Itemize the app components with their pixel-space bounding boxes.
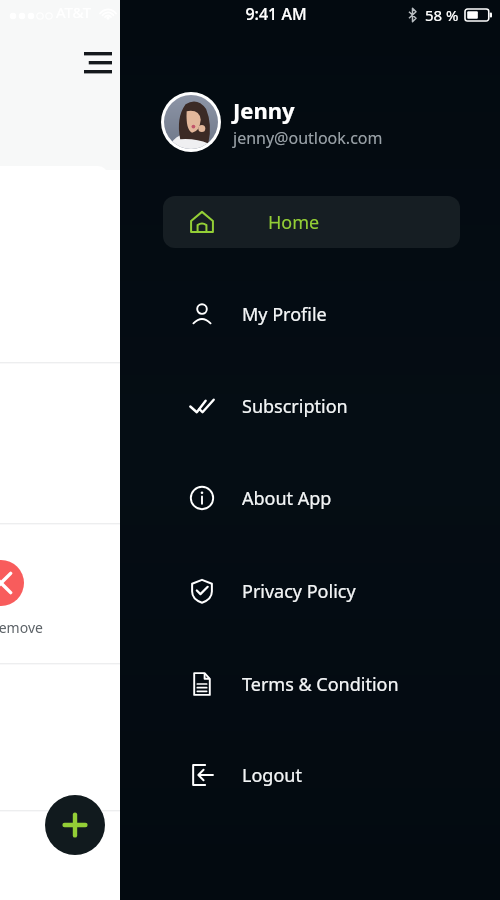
- staticText: My Profile: [242, 302, 327, 327]
- button[interactable]: Logout: [163, 753, 460, 797]
- staticText: Jenny: [233, 95, 295, 125]
- button[interactable]: Terms & Condition: [163, 662, 460, 706]
- button[interactable]: Subscription: [163, 384, 460, 428]
- staticText: Terms & Condition: [242, 672, 399, 697]
- staticText: Home: [268, 210, 320, 235]
- button[interactable]: Menu: [78, 44, 118, 76]
- button[interactable]: Home: [163, 196, 460, 248]
- staticText: Privacy Policy: [242, 579, 356, 604]
- staticText: Remove: [0, 618, 43, 637]
- staticText: 9:41 AM: [120, 3, 432, 25]
- button[interactable]: Privacy Policy: [163, 569, 460, 613]
- staticText: Logout: [242, 763, 302, 788]
- button[interactable]: About App: [163, 476, 460, 520]
- button[interactable]: Remove: [0, 560, 24, 606]
- button[interactable]: My Profile: [163, 292, 460, 336]
- staticText: About App: [242, 486, 332, 511]
- button[interactable]: Add: [45, 795, 105, 855]
- staticText: jenny@outlook.com: [233, 127, 383, 149]
- button[interactable]: Jenny: [161, 92, 383, 152]
- staticText: Subscription: [242, 394, 348, 419]
- staticText: 58 %: [425, 5, 459, 25]
